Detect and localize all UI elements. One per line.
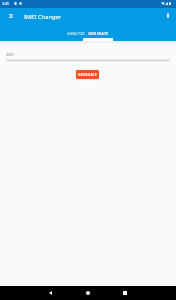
button[interactable]: Open navigation drawer <box>5 10 16 21</box>
staticText: 3:05 <box>2 1 10 6</box>
button[interactable]: More options <box>162 10 173 21</box>
button[interactable]: Recent apps <box>118 286 132 300</box>
button[interactable]: IMEI <box>6 49 170 63</box>
button[interactable]: Home <box>81 286 95 300</box>
staticText: IMEI Changer <box>24 13 62 21</box>
staticText: IMEI <box>6 52 14 57</box>
button[interactable]: Back <box>43 286 57 300</box>
staticText: GENERATE <box>88 31 109 36</box>
staticText: GENERATE <box>78 72 98 77</box>
button[interactable]: GENERATE <box>83 26 113 41</box>
button[interactable]: GENERATE <box>76 70 99 79</box>
staticText: ANALYZE <box>67 31 85 36</box>
button[interactable]: ANALYZE <box>54 26 84 41</box>
